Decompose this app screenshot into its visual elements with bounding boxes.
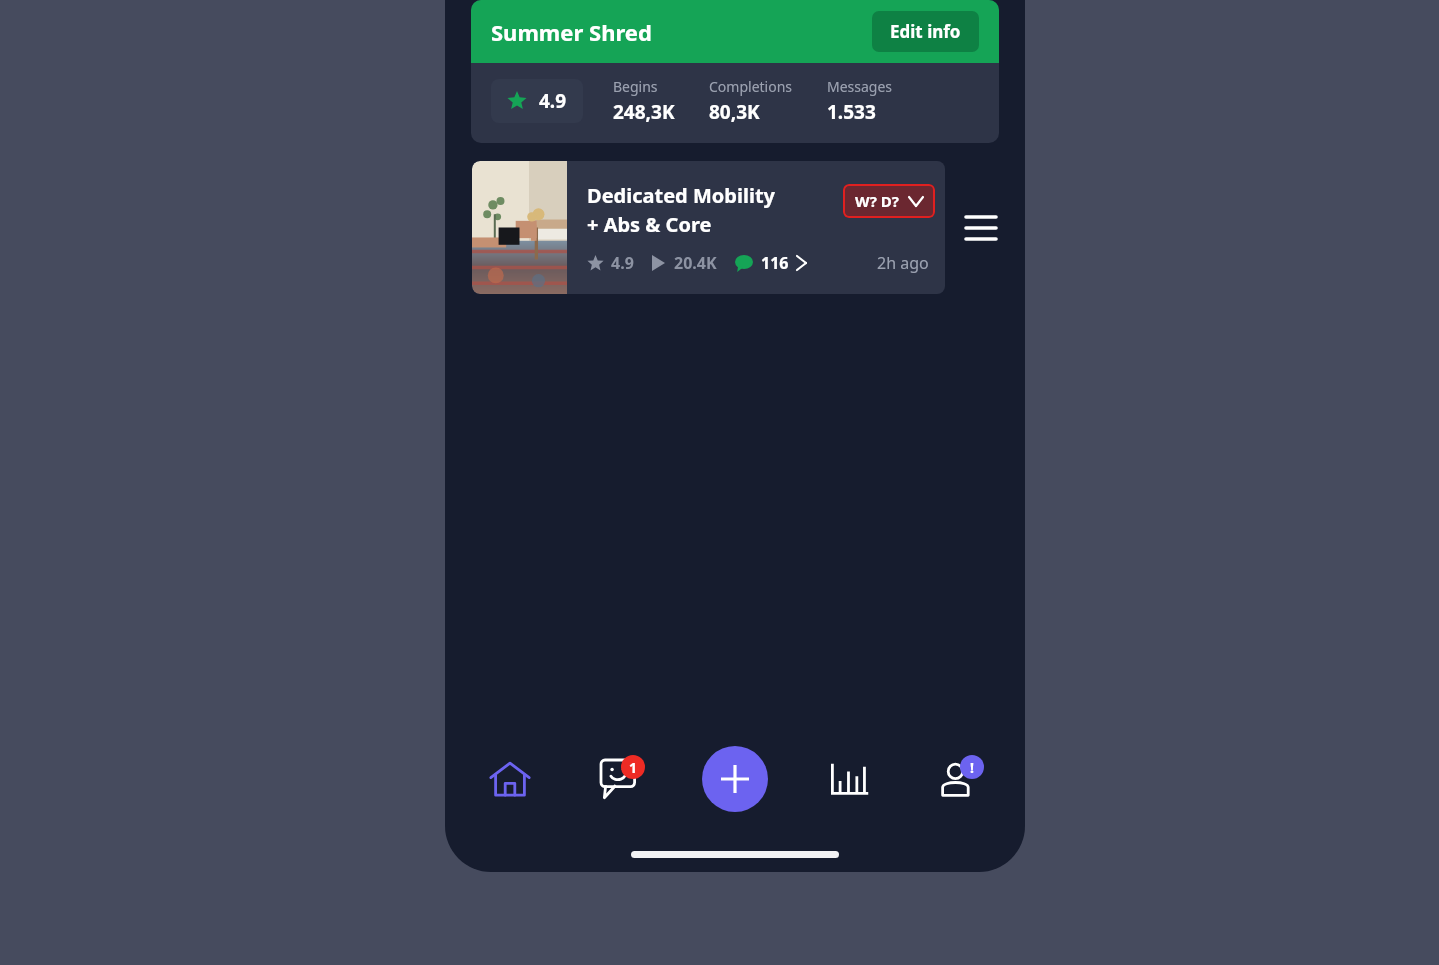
staticText: 116 bbox=[761, 252, 789, 274]
staticText: + Abs & Core bbox=[587, 211, 712, 238]
staticText: 2h ago bbox=[877, 252, 929, 274]
button[interactable]: 4.9 bbox=[491, 79, 583, 123]
staticText: 80,3K bbox=[709, 99, 760, 125]
button[interactable]: Add bbox=[702, 746, 768, 812]
staticText: 1.533 bbox=[827, 99, 876, 125]
button[interactable]: Messages bbox=[592, 750, 650, 808]
staticText: 20.4K bbox=[674, 252, 717, 274]
staticText: Begins bbox=[613, 77, 658, 96]
button[interactable]: Edit info bbox=[872, 11, 979, 52]
staticText: 248,3K bbox=[613, 99, 675, 125]
button[interactable]: Dedicated Mobility bbox=[472, 161, 945, 294]
staticText: W? D? bbox=[855, 191, 899, 211]
staticText: ! bbox=[970, 758, 974, 777]
staticText: Summer Shred bbox=[491, 17, 652, 47]
staticText: Completions bbox=[709, 77, 793, 96]
button[interactable]: Menu bbox=[959, 206, 1003, 250]
button[interactable]: Profile bbox=[931, 750, 989, 808]
button[interactable]: Home bbox=[481, 750, 539, 808]
staticText: Dedicated Mobility bbox=[587, 182, 775, 209]
button[interactable]: Stats bbox=[821, 750, 879, 808]
staticText: 4.9 bbox=[539, 88, 567, 114]
staticText: 4.9 bbox=[611, 252, 634, 274]
staticText: 1 bbox=[629, 758, 638, 777]
staticText: Messages bbox=[827, 77, 893, 96]
button[interactable]: W? D? bbox=[843, 184, 935, 218]
staticText: Edit info bbox=[890, 20, 961, 43]
